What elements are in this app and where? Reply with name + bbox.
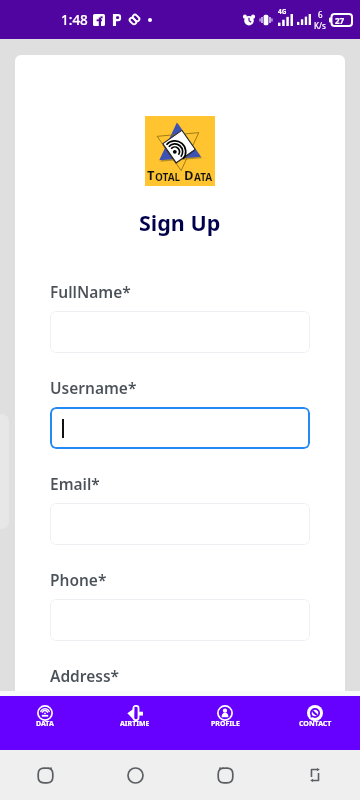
staticText: Phone* bbox=[50, 569, 107, 590]
button[interactable]: Recents bbox=[37, 767, 54, 784]
button[interactable]: CONTACT bbox=[270, 696, 360, 750]
staticText: OTAL bbox=[155, 170, 181, 184]
staticText: Sign Up bbox=[139, 208, 221, 237]
staticText: Address* bbox=[50, 665, 120, 686]
button[interactable] bbox=[50, 599, 310, 641]
staticText: Email* bbox=[50, 473, 100, 494]
staticText: 4G bbox=[278, 7, 287, 16]
staticText: 27 bbox=[335, 15, 345, 26]
button[interactable]: Home bbox=[127, 767, 144, 784]
staticText: FullName* bbox=[50, 281, 131, 302]
button[interactable] bbox=[50, 311, 310, 353]
button[interactable]: Back bbox=[217, 767, 234, 784]
button[interactable] bbox=[50, 503, 310, 545]
staticText: AIRTIME bbox=[120, 719, 150, 729]
button[interactable]: DATA bbox=[0, 696, 90, 750]
staticText: Username* bbox=[50, 377, 137, 398]
staticText: CONTACT bbox=[299, 719, 332, 729]
staticText: T bbox=[147, 166, 155, 184]
staticText: 1:48 bbox=[61, 11, 88, 29]
staticText: DATA bbox=[36, 719, 54, 729]
button[interactable]: PROFILE bbox=[180, 696, 270, 750]
button[interactable]: AIRTIME bbox=[90, 696, 180, 750]
staticText: D bbox=[184, 166, 194, 184]
staticText: K/s bbox=[314, 20, 326, 31]
button[interactable] bbox=[50, 407, 310, 449]
staticText: PROFILE bbox=[211, 719, 240, 729]
staticText: 6 bbox=[318, 9, 323, 20]
staticText: ATA bbox=[194, 170, 213, 184]
button[interactable]: Rotate screen bbox=[307, 767, 323, 783]
